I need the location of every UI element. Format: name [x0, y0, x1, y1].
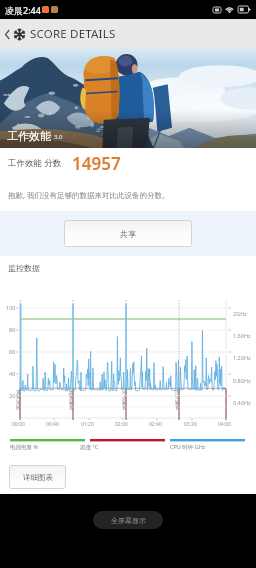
button[interactable]: 全屏幕显示: [93, 511, 163, 529]
button[interactable]: SCORE DETAILS: [1, 26, 116, 42]
staticText: 1.60Hz: [233, 332, 251, 339]
staticText: 02:00: [115, 421, 128, 428]
staticText: 14957: [72, 152, 121, 175]
staticText: 40: [9, 370, 16, 377]
staticText: 1.20Hz: [233, 354, 251, 361]
staticText: 04:00: [218, 421, 231, 428]
button[interactable]: 共享: [64, 220, 192, 247]
staticText: 温度 °C: [80, 443, 99, 451]
button[interactable]: 详细图表: [9, 465, 66, 489]
staticText: 00:00: [12, 421, 25, 428]
staticText: 抱歉, 我们没有足够的数据来对比此设备的分数。: [8, 190, 170, 200]
staticText: 01:20: [81, 421, 94, 428]
staticText: 网页浏览: [16, 390, 22, 410]
staticText: 工作效能 分数: [8, 157, 62, 169]
staticText: 全屏幕显示: [111, 516, 146, 525]
staticText: 3.0: [54, 133, 63, 141]
staticText: 0.80Hz: [233, 377, 251, 384]
staticText: 详细图表: [23, 473, 53, 482]
staticText: 文书编辑: [122, 390, 128, 410]
staticText: 60: [9, 348, 16, 355]
staticText: 80: [9, 326, 16, 333]
staticText: 共享: [120, 229, 136, 239]
staticText: 照片编辑: [175, 390, 181, 410]
staticText: CPU 时钟 GHz: [170, 443, 206, 451]
staticText: 100: [6, 304, 16, 311]
staticText: 监控数据: [8, 263, 40, 273]
staticText: 电池电量 %: [10, 443, 39, 451]
staticText: 2GHz: [233, 310, 247, 317]
staticText: 00:40: [46, 421, 59, 428]
staticText: 0.40Hz: [233, 399, 251, 406]
staticText: 凌晨2:44: [5, 4, 41, 16]
staticText: 02:40: [149, 421, 162, 428]
staticText: 03:20: [184, 421, 197, 428]
staticText: 20: [9, 392, 16, 399]
staticText: SCORE DETAILS: [30, 26, 116, 42]
staticText: 工作效能: [7, 129, 51, 143]
staticText: 视频编辑: [69, 390, 75, 410]
